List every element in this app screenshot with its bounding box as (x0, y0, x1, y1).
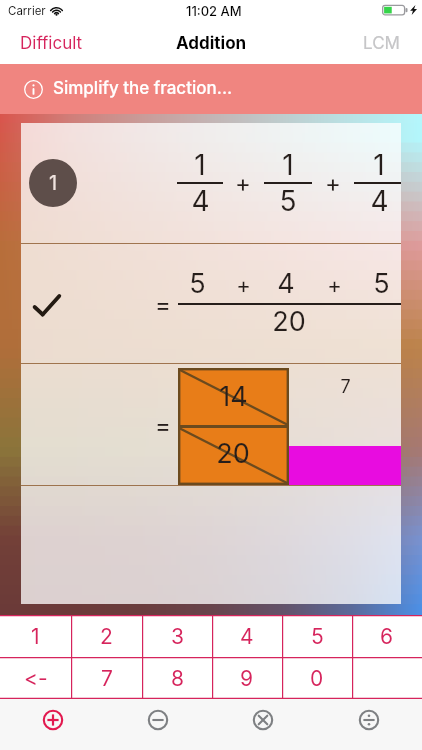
staticText: 1 (282, 148, 294, 182)
button[interactable]: 3 (142, 615, 212, 657)
staticText: 4 (370, 184, 389, 218)
button[interactable]: 8 (142, 657, 212, 699)
staticText: <- (24, 666, 48, 691)
staticText: 1 (31, 624, 40, 649)
staticText: 20 (272, 305, 306, 338)
staticText: LCM (363, 33, 400, 54)
staticText: 11:02 AM (186, 3, 242, 19)
staticText: 9 (240, 666, 254, 691)
staticText: + (235, 169, 251, 198)
button[interactable]: 5 (282, 615, 352, 657)
staticText: Simplify the fraction... (53, 78, 233, 99)
staticText: 2 (100, 624, 113, 649)
button[interactable] (352, 657, 422, 699)
button[interactable]: Subtract (105, 699, 210, 750)
button[interactable]: Difficult (20, 33, 83, 54)
button[interactable]: 1 (29, 159, 77, 207)
button[interactable]: Add (0, 699, 105, 750)
button[interactable]: Divide (316, 699, 422, 750)
staticText: 7 (340, 376, 351, 398)
staticText: Carrier (8, 4, 46, 18)
staticText: 5 (189, 267, 206, 300)
button[interactable]: 1 (0, 615, 71, 657)
staticText: 1 (373, 148, 385, 182)
staticText: 5 (279, 184, 297, 218)
button[interactable]: 2 (71, 615, 142, 657)
button[interactable]: Simplify the fraction... (0, 64, 422, 114)
button[interactable]: <- (0, 657, 71, 699)
staticText: 8 (171, 666, 184, 691)
staticText: 4 (191, 184, 210, 218)
staticText: 5 (311, 624, 324, 649)
staticText: = (155, 411, 171, 440)
staticText: 20 (216, 437, 250, 470)
staticText: 3 (171, 624, 184, 649)
staticText: Addition (176, 33, 247, 54)
staticText: 1 (194, 148, 206, 182)
button[interactable]: LCM (363, 33, 400, 54)
staticText: + (325, 169, 341, 198)
staticText: 5 (373, 267, 390, 300)
staticText: 0 (310, 666, 324, 691)
staticText: 4 (277, 267, 295, 300)
staticText: + (236, 272, 251, 299)
staticText: + (327, 272, 342, 299)
staticText: = (155, 290, 171, 319)
button[interactable]: 9 (212, 657, 282, 699)
button[interactable]: 0 (282, 657, 352, 699)
staticText: Difficult (20, 33, 83, 54)
staticText: 6 (380, 624, 394, 649)
staticText: 4 (240, 624, 254, 649)
staticText: 7 (101, 666, 113, 691)
staticText: 14 (219, 380, 248, 413)
button[interactable]: 4 (212, 615, 282, 657)
button[interactable]: Multiply (210, 699, 316, 750)
button[interactable]: 7 (71, 657, 142, 699)
staticText: 1 (49, 171, 58, 195)
button[interactable]: 6 (352, 615, 422, 657)
